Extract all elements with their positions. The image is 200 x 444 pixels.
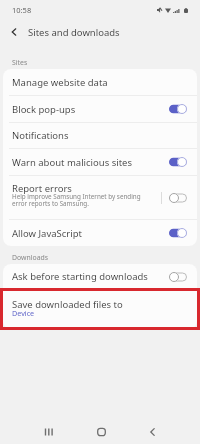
button[interactable]: Manage website data [3, 69, 197, 95]
staticText: Help improve Samsung Internet by sending… [12, 192, 153, 208]
button[interactable]: Switch off [169, 193, 187, 203]
staticText: Sites and downloads [28, 26, 120, 39]
button[interactable]: Ask before starting downloads [3, 264, 197, 289]
button[interactable]: Back [135, 420, 170, 444]
staticText: Save downloaded files to [12, 298, 123, 311]
staticText: Device [12, 308, 35, 318]
staticText: 10:58 [12, 5, 32, 15]
button[interactable]: Switch on [169, 104, 187, 114]
button[interactable]: Recent apps [31, 420, 66, 444]
button[interactable]: Allow JavaScript [3, 220, 197, 246]
staticText: Warn about malicious sites [12, 156, 169, 169]
button[interactable]: Switch off [169, 272, 187, 282]
staticText: Manage website data [12, 76, 108, 89]
button[interactable]: Block pop-ups [3, 96, 197, 122]
button[interactable]: Navigate up [0, 20, 28, 44]
button[interactable]: Warn about malicious sites [3, 149, 197, 175]
button[interactable]: Notifications [3, 123, 197, 148]
staticText: Report errors [12, 182, 72, 195]
staticText: Notifications [12, 129, 69, 142]
button[interactable]: Switch on [169, 157, 187, 167]
staticText: Downloads [12, 253, 49, 262]
staticText: Allow JavaScript [12, 227, 169, 240]
staticText: Ask before starting downloads [12, 270, 169, 283]
button[interactable]: Save downloaded files to [3, 290, 197, 329]
button[interactable]: Home [84, 420, 119, 444]
staticText: Sites [12, 58, 28, 67]
staticText: Block pop-ups [12, 103, 169, 116]
button[interactable]: Switch on [169, 228, 187, 238]
